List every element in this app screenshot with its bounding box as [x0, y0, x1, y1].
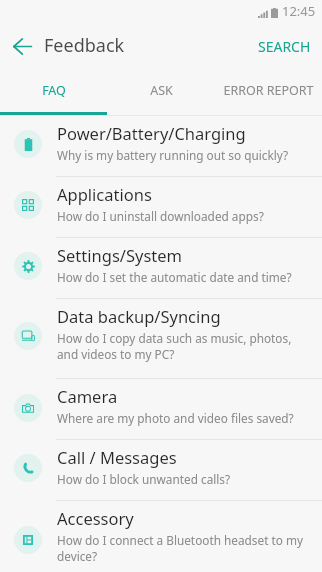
staticText: How do I set the automatic date and time… — [57, 269, 292, 285]
staticText: How do I connect a Bluetooth headset to … — [57, 532, 304, 565]
button[interactable]: Power/Battery/Charging — [0, 116, 322, 176]
staticText: 12:45 — [282, 2, 316, 20]
staticText: How do I copy data such as music, photos… — [57, 330, 304, 363]
staticText: Settings/System — [57, 244, 182, 266]
button[interactable]: Navigate up — [0, 22, 44, 70]
staticText: Accessory — [57, 507, 134, 529]
button[interactable]: Data backup/Syncing — [0, 299, 322, 378]
staticText: Power/Battery/Charging — [57, 122, 246, 144]
staticText: FAQ — [42, 82, 66, 99]
button[interactable]: Call / Messages — [0, 440, 322, 500]
button[interactable]: ERROR REPORT — [215, 70, 322, 112]
button[interactable]: Applications — [0, 177, 322, 237]
staticText: SEARCH — [258, 37, 311, 56]
button[interactable]: FAQ — [0, 70, 108, 112]
staticText: Why is my battery running out so quickly… — [57, 147, 289, 163]
button[interactable]: ASK — [108, 70, 215, 112]
staticText: How do I block unwanted calls? — [57, 471, 231, 487]
button[interactable]: Accessory — [0, 501, 322, 572]
staticText: Camera — [57, 385, 118, 407]
button[interactable]: Camera — [0, 379, 322, 439]
staticText: ASK — [150, 82, 173, 99]
staticText: Data backup/Syncing — [57, 305, 221, 327]
staticText: Where are my photo and video files saved… — [57, 410, 294, 426]
staticText: How do I uninstall downloaded apps? — [57, 208, 264, 224]
staticText: Applications — [57, 183, 152, 205]
button[interactable]: Settings/System — [0, 238, 322, 298]
staticText: ERROR REPORT — [223, 82, 314, 99]
staticText: Feedback — [44, 33, 125, 58]
button[interactable]: SEARCH — [247, 24, 322, 69]
staticText: Call / Messages — [57, 446, 177, 468]
